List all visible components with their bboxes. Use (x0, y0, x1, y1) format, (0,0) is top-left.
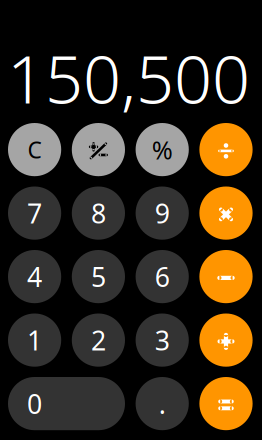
staticText: 7 (27, 195, 42, 231)
staticText: 2 (91, 322, 106, 358)
button[interactable]: % (136, 123, 189, 176)
button[interactable]: C (8, 123, 61, 176)
button[interactable]: Minus (199, 250, 253, 303)
button[interactable]: 0 (8, 377, 125, 430)
button[interactable]: 7 (8, 186, 61, 240)
button[interactable]: Divide (199, 123, 253, 176)
staticText: 8 (91, 195, 106, 231)
button[interactable]: Multiply (199, 186, 253, 240)
button[interactable]: 9 (136, 186, 189, 240)
button[interactable]: 8 (72, 186, 125, 240)
staticText: . (159, 386, 166, 421)
staticText: 150,500 (7, 33, 250, 122)
staticText: 1 (27, 322, 42, 358)
button[interactable]: 6 (136, 250, 189, 303)
button[interactable]: Equals (199, 377, 253, 430)
staticText: % (152, 133, 173, 166)
staticText: 3 (155, 322, 170, 358)
button[interactable]: 5 (72, 250, 125, 303)
button[interactable]: Plus (199, 313, 253, 367)
staticText: 9 (155, 195, 170, 231)
button[interactable]: 2 (72, 313, 125, 367)
staticText: 0 (27, 386, 42, 421)
button[interactable]: 1 (8, 313, 61, 367)
staticText: 5 (91, 259, 106, 294)
staticText: C (28, 134, 42, 165)
button[interactable]: 4 (8, 250, 61, 303)
staticText: 4 (27, 259, 42, 294)
button[interactable]: Plus minus (72, 123, 125, 176)
button[interactable]: . (136, 377, 189, 430)
staticText: 6 (155, 259, 170, 294)
button[interactable]: 3 (136, 313, 189, 367)
